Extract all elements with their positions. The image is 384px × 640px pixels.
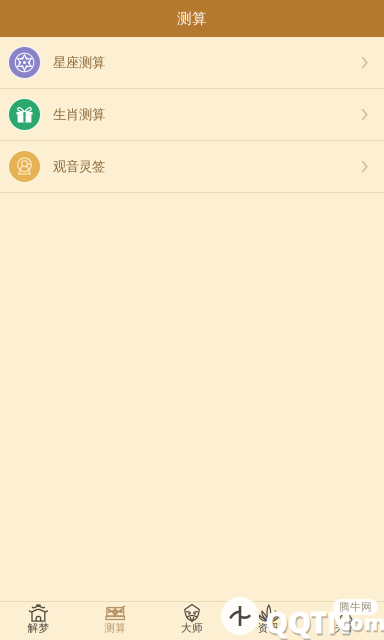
- staticText: 解梦: [27, 621, 49, 634]
- button[interactable]: 星座测算: [0, 37, 384, 88]
- staticText: 腾牛网: [339, 600, 372, 613]
- button[interactable]: 观音灵签: [0, 141, 384, 192]
- staticText: com: [340, 610, 384, 638]
- button[interactable]: 生肖测算: [0, 89, 384, 140]
- staticText: 生肖测算: [53, 106, 105, 123]
- button[interactable]: 解梦: [0, 602, 77, 640]
- staticText: 资讯: [258, 621, 280, 634]
- button[interactable]: 测算: [77, 602, 154, 640]
- staticText: 星座测算: [53, 54, 105, 71]
- button[interactable]: 大师: [154, 602, 230, 640]
- staticText: com: [339, 608, 384, 636]
- staticText: 观音灵签: [53, 158, 105, 175]
- button[interactable]: 夫子: [307, 602, 384, 640]
- staticText: QQTN: [265, 602, 351, 640]
- staticText: 大师: [181, 621, 203, 634]
- staticText: 夫子: [335, 621, 357, 634]
- staticText: 测算: [104, 621, 126, 634]
- staticText: 测算: [177, 9, 207, 27]
- staticText: QQTN: [266, 604, 352, 640]
- button[interactable]: 资讯: [230, 602, 307, 640]
